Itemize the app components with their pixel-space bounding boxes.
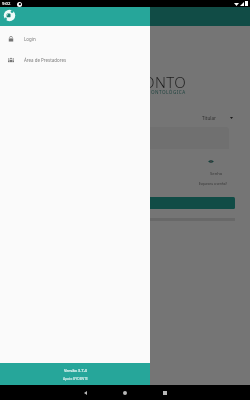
staticText: Apoio BYDENTE — [63, 376, 88, 381]
button[interactable]: Área de Prestadores — [0, 53, 150, 67]
button[interactable]: Recents — [154, 385, 175, 400]
button[interactable]: Esqueceu a senha? — [0, 182, 227, 186]
staticText: Senha — [210, 171, 223, 177]
button[interactable] — [20, 127, 229, 149]
staticText: Login — [24, 36, 36, 42]
staticText: Área de Prestadores — [24, 57, 67, 63]
button[interactable]: Show password — [205, 155, 217, 167]
staticText: Versão 3.7.4 — [64, 368, 87, 373]
button[interactable]: Login — [0, 32, 150, 46]
button[interactable]: Back — [75, 385, 96, 400]
button[interactable]: Titular — [20, 112, 233, 124]
staticText: Titular — [202, 115, 216, 121]
staticText: 9:02 — [2, 1, 11, 7]
button[interactable]: App logo — [3, 9, 16, 22]
staticText: ODONTO — [120, 72, 187, 92]
button[interactable]: Home — [114, 385, 135, 400]
button[interactable]: ENTRAR — [15, 197, 235, 209]
staticText: CLÍNICA ODONTOLÓGICA — [120, 89, 186, 95]
